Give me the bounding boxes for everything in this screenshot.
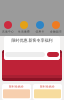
button[interactable]: 金融超市 [48,21,64,33]
button[interactable]: 限时抢购价 [2,84,31,100]
button[interactable]: 生活缴费 [16,21,32,33]
button[interactable]: 充值中心 [0,21,16,33]
button[interactable]: 限时抢购价 [33,84,62,100]
staticText: 限时抢购价 [40,85,55,88]
staticText: 金融超市 [50,30,62,33]
staticText: 信用卡 [35,30,44,33]
staticText: 限时优惠 新客专享福利 [11,38,52,43]
button[interactable]: 信用卡 [32,21,48,33]
staticText: 生活缴费 [18,30,30,33]
staticText: 充值中心 [2,30,14,33]
staticText: 限时抢购价 [9,85,24,88]
button[interactable] [47,52,59,57]
